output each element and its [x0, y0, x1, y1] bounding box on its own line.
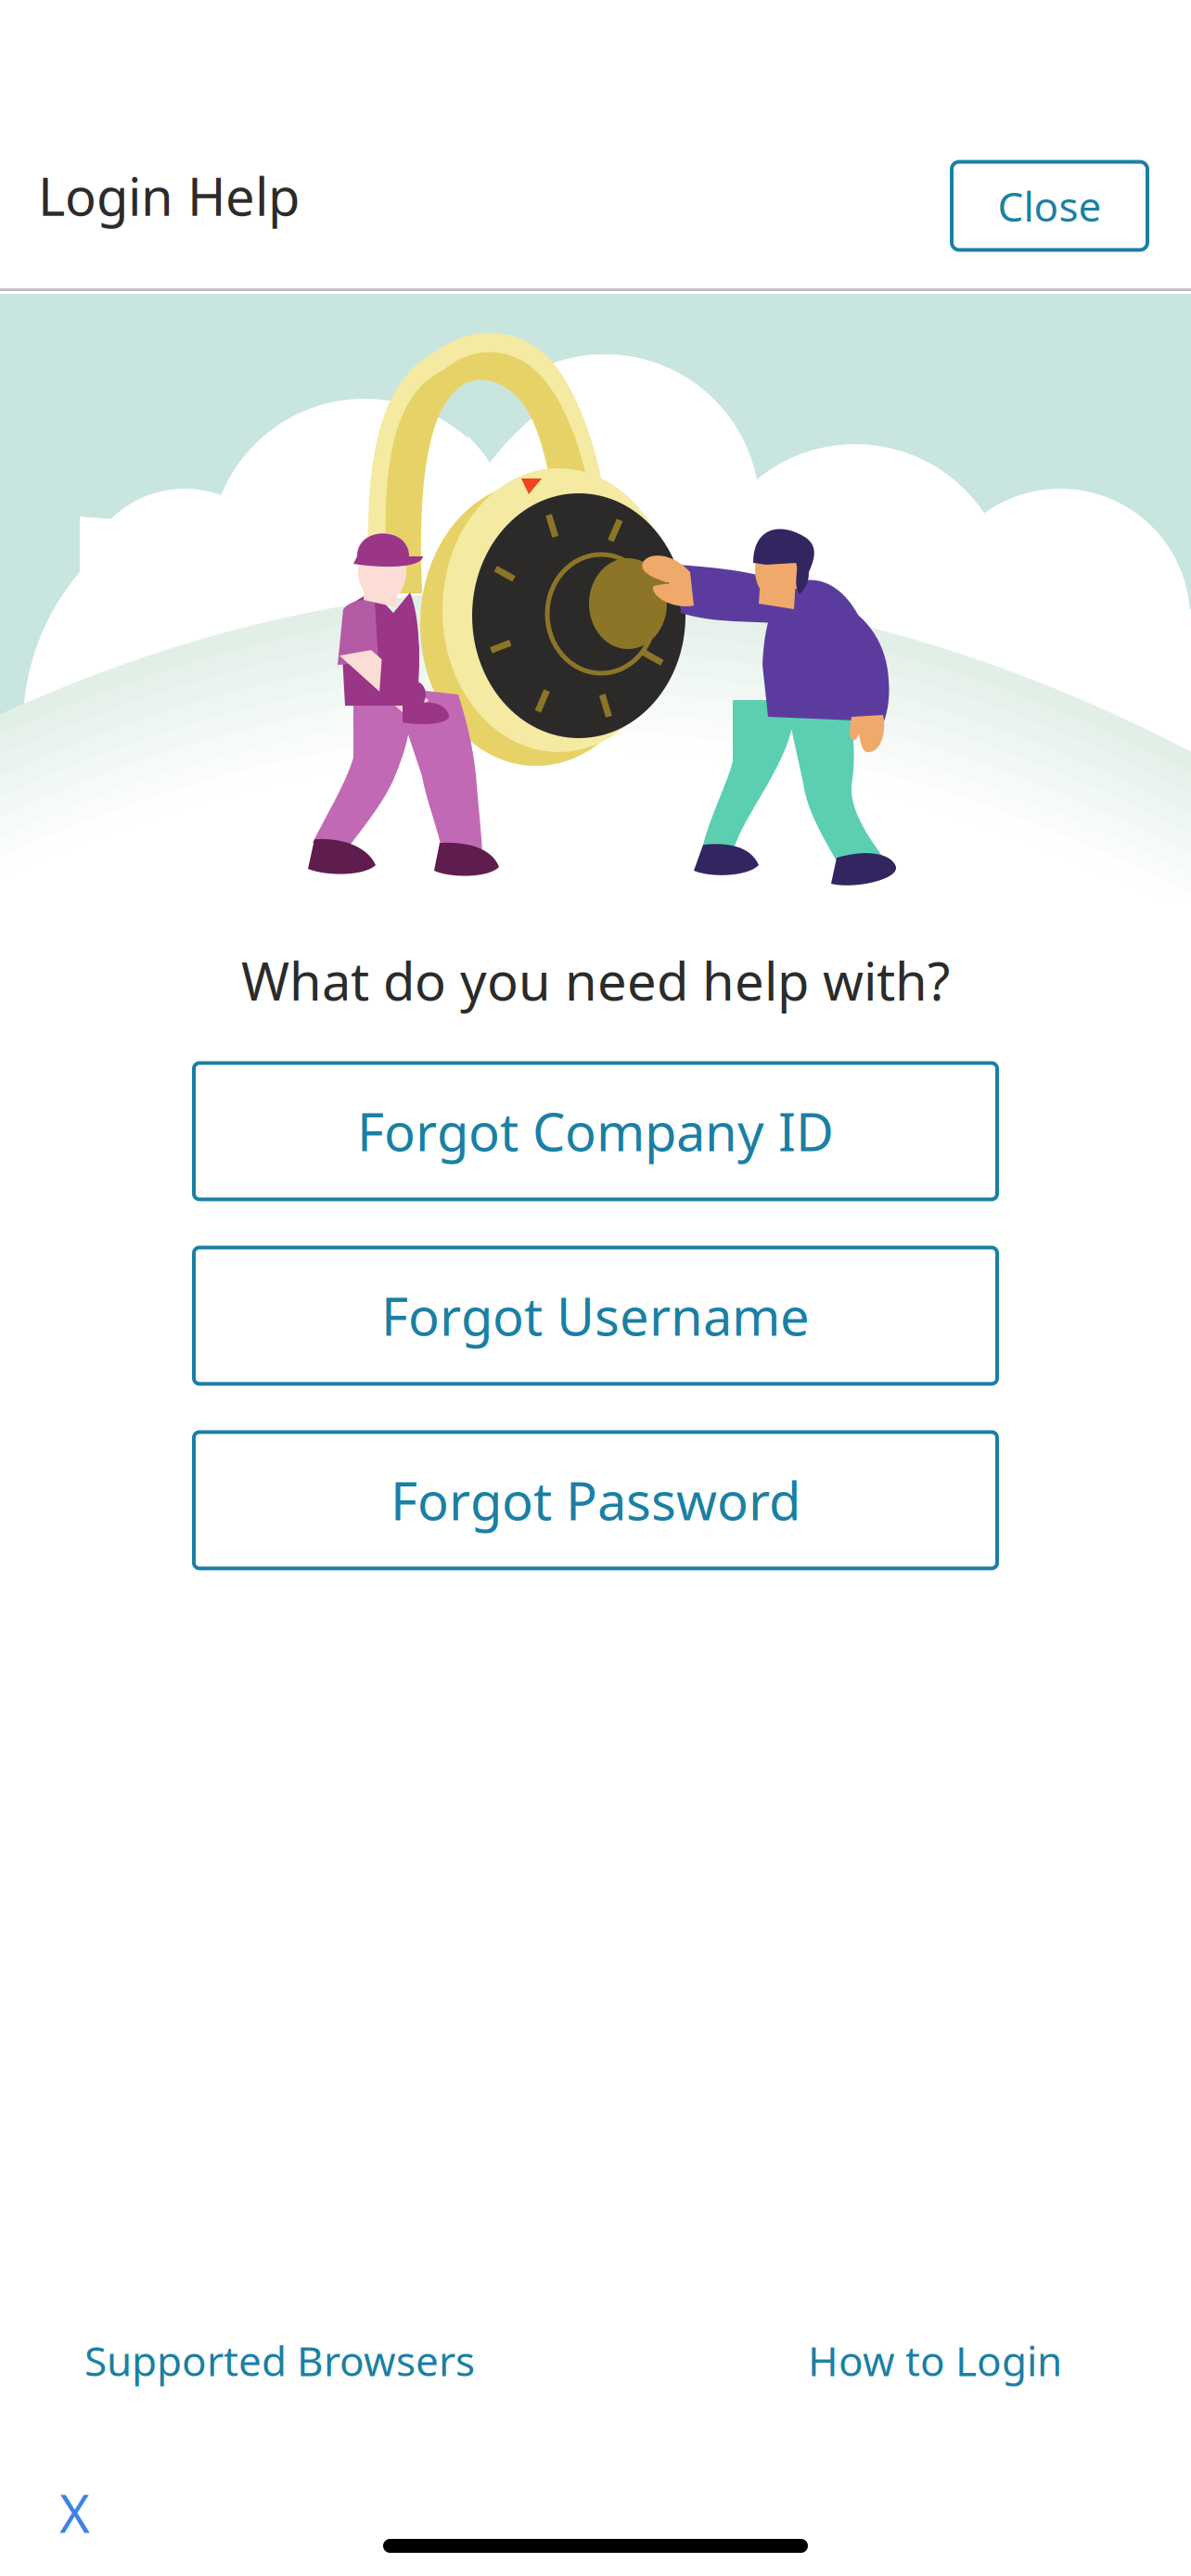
button[interactable]: Close: [59, 2478, 90, 2547]
staticText: X: [59, 2478, 90, 2547]
button[interactable]: Supported Browsers: [84, 2333, 475, 2387]
button[interactable]: Close: [952, 162, 1147, 250]
staticText: Forgot Password: [391, 1466, 800, 1535]
staticText: What do you need help with?: [241, 946, 950, 1015]
button[interactable]: Forgot Username: [194, 1248, 997, 1384]
button[interactable]: Forgot Company ID: [194, 1063, 997, 1199]
staticText: How to Login: [808, 2333, 1062, 2387]
staticText: Supported Browsers: [84, 2333, 475, 2387]
button[interactable]: How to Login: [808, 2333, 1062, 2387]
staticText: Forgot Username: [381, 1281, 810, 1350]
button[interactable]: Forgot Password: [194, 1432, 997, 1568]
staticText: Close: [998, 179, 1101, 233]
staticText: Forgot Company ID: [357, 1097, 834, 1166]
staticText: Login Help: [38, 161, 300, 230]
